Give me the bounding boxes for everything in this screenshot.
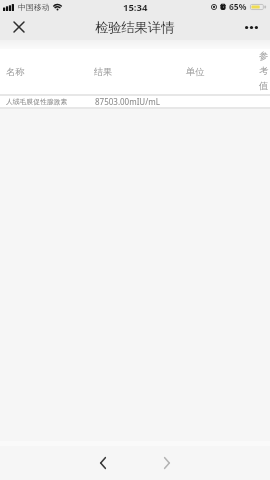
staticText: 单位 <box>186 66 205 78</box>
staticText: 中国移动 <box>18 2 50 12</box>
staticText: 87503.00mIU/mL <box>95 96 160 107</box>
staticText: 结果 <box>94 66 113 78</box>
button[interactable]: Forward <box>156 452 177 473</box>
staticText: 名称 <box>6 66 25 78</box>
staticText: 人绒毛膜促性腺激素 <box>6 97 68 106</box>
staticText: 65% <box>229 1 247 13</box>
button[interactable]: More options <box>244 14 270 40</box>
staticText: 15:34 <box>123 1 148 14</box>
staticText: 考 <box>259 65 269 77</box>
staticText: 参 <box>259 50 269 62</box>
staticText: 值 <box>259 80 269 92</box>
button[interactable]: Close <box>0 14 28 40</box>
button[interactable]: Back <box>92 452 113 473</box>
staticText: 检验结果详情 <box>95 19 175 36</box>
button[interactable]: 人绒毛膜促性腺激素 <box>0 96 270 107</box>
